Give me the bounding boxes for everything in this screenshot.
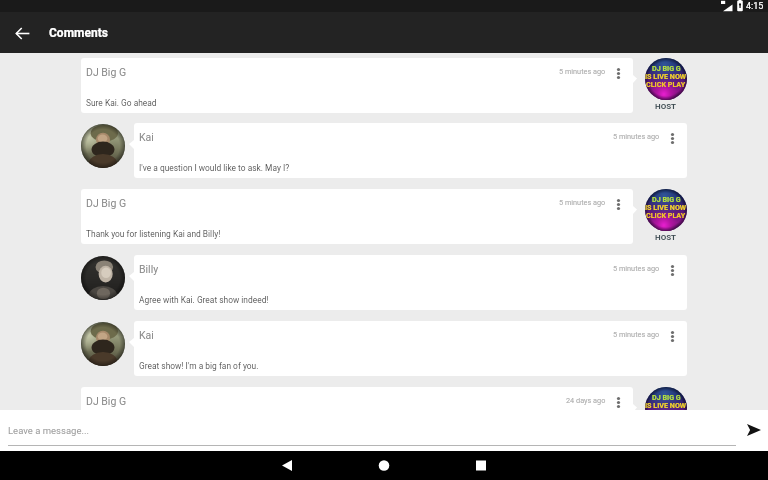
button[interactable]: DJ Big G bbox=[81, 387, 633, 442]
staticText: Comments bbox=[49, 26, 108, 40]
staticText: Great show! I'm a big fan of you. bbox=[139, 361, 259, 371]
staticText: Leave a message... bbox=[8, 425, 89, 436]
staticText: IS LIVE NOW bbox=[645, 203, 687, 211]
staticText: DJ Big G bbox=[86, 66, 127, 78]
button[interactable]: Kai bbox=[134, 321, 687, 376]
staticText: 5 minutes ago bbox=[613, 330, 660, 339]
button[interactable]: Billy bbox=[134, 255, 687, 310]
staticText: 5 minutes ago bbox=[559, 67, 606, 76]
staticText: HOST bbox=[655, 102, 677, 111]
staticText: Thank you for listening Kai and Billy! bbox=[86, 229, 221, 239]
staticText: I've a question I would like to ask. May… bbox=[139, 163, 290, 173]
button[interactable]: Kai bbox=[134, 123, 687, 178]
staticText: IS LIVE NOW bbox=[645, 401, 687, 409]
staticText: Kai bbox=[139, 329, 154, 341]
staticText: Kai bbox=[139, 131, 154, 143]
staticText: DJ BIG G bbox=[652, 393, 681, 401]
staticText: 5 minutes ago bbox=[559, 198, 606, 207]
button[interactable]: More options bbox=[613, 65, 624, 82]
staticText: DJ Big G bbox=[86, 197, 127, 209]
button[interactable]: DJ Big G bbox=[81, 58, 633, 113]
button[interactable]: Send bbox=[741, 417, 767, 443]
button[interactable]: Leave a message... bbox=[8, 421, 728, 439]
staticText: Agree with Kai. Great show indeed! bbox=[139, 295, 269, 305]
staticText: Sure Kai. Go ahead bbox=[86, 98, 157, 108]
staticText: CLICK PLAY bbox=[646, 80, 686, 88]
button[interactable]: More options bbox=[667, 262, 678, 279]
staticText: CLICK PLAY bbox=[646, 211, 686, 219]
staticText: DJ BIG G bbox=[652, 195, 681, 203]
staticText: DJ BIG G bbox=[652, 64, 681, 72]
staticText: 5 minutes ago bbox=[613, 132, 660, 141]
staticText: 5 minutes ago bbox=[613, 264, 660, 273]
button[interactable]: More options bbox=[667, 130, 678, 147]
staticText: HOST bbox=[655, 233, 677, 242]
staticText: Billy bbox=[139, 263, 159, 275]
staticText: DJ Big G bbox=[86, 395, 127, 407]
button[interactable]: More options bbox=[667, 328, 678, 345]
staticText: 24 days ago bbox=[566, 396, 606, 405]
staticText: IS LIVE NOW bbox=[645, 72, 687, 80]
button[interactable]: DJ Big G bbox=[81, 189, 633, 244]
button[interactable]: More options bbox=[613, 196, 624, 213]
staticText: CLICK PLAY bbox=[646, 409, 686, 417]
staticText: 4:15 bbox=[746, 1, 764, 12]
button[interactable]: More options bbox=[613, 394, 624, 411]
button[interactable]: Back bbox=[0, 12, 42, 53]
